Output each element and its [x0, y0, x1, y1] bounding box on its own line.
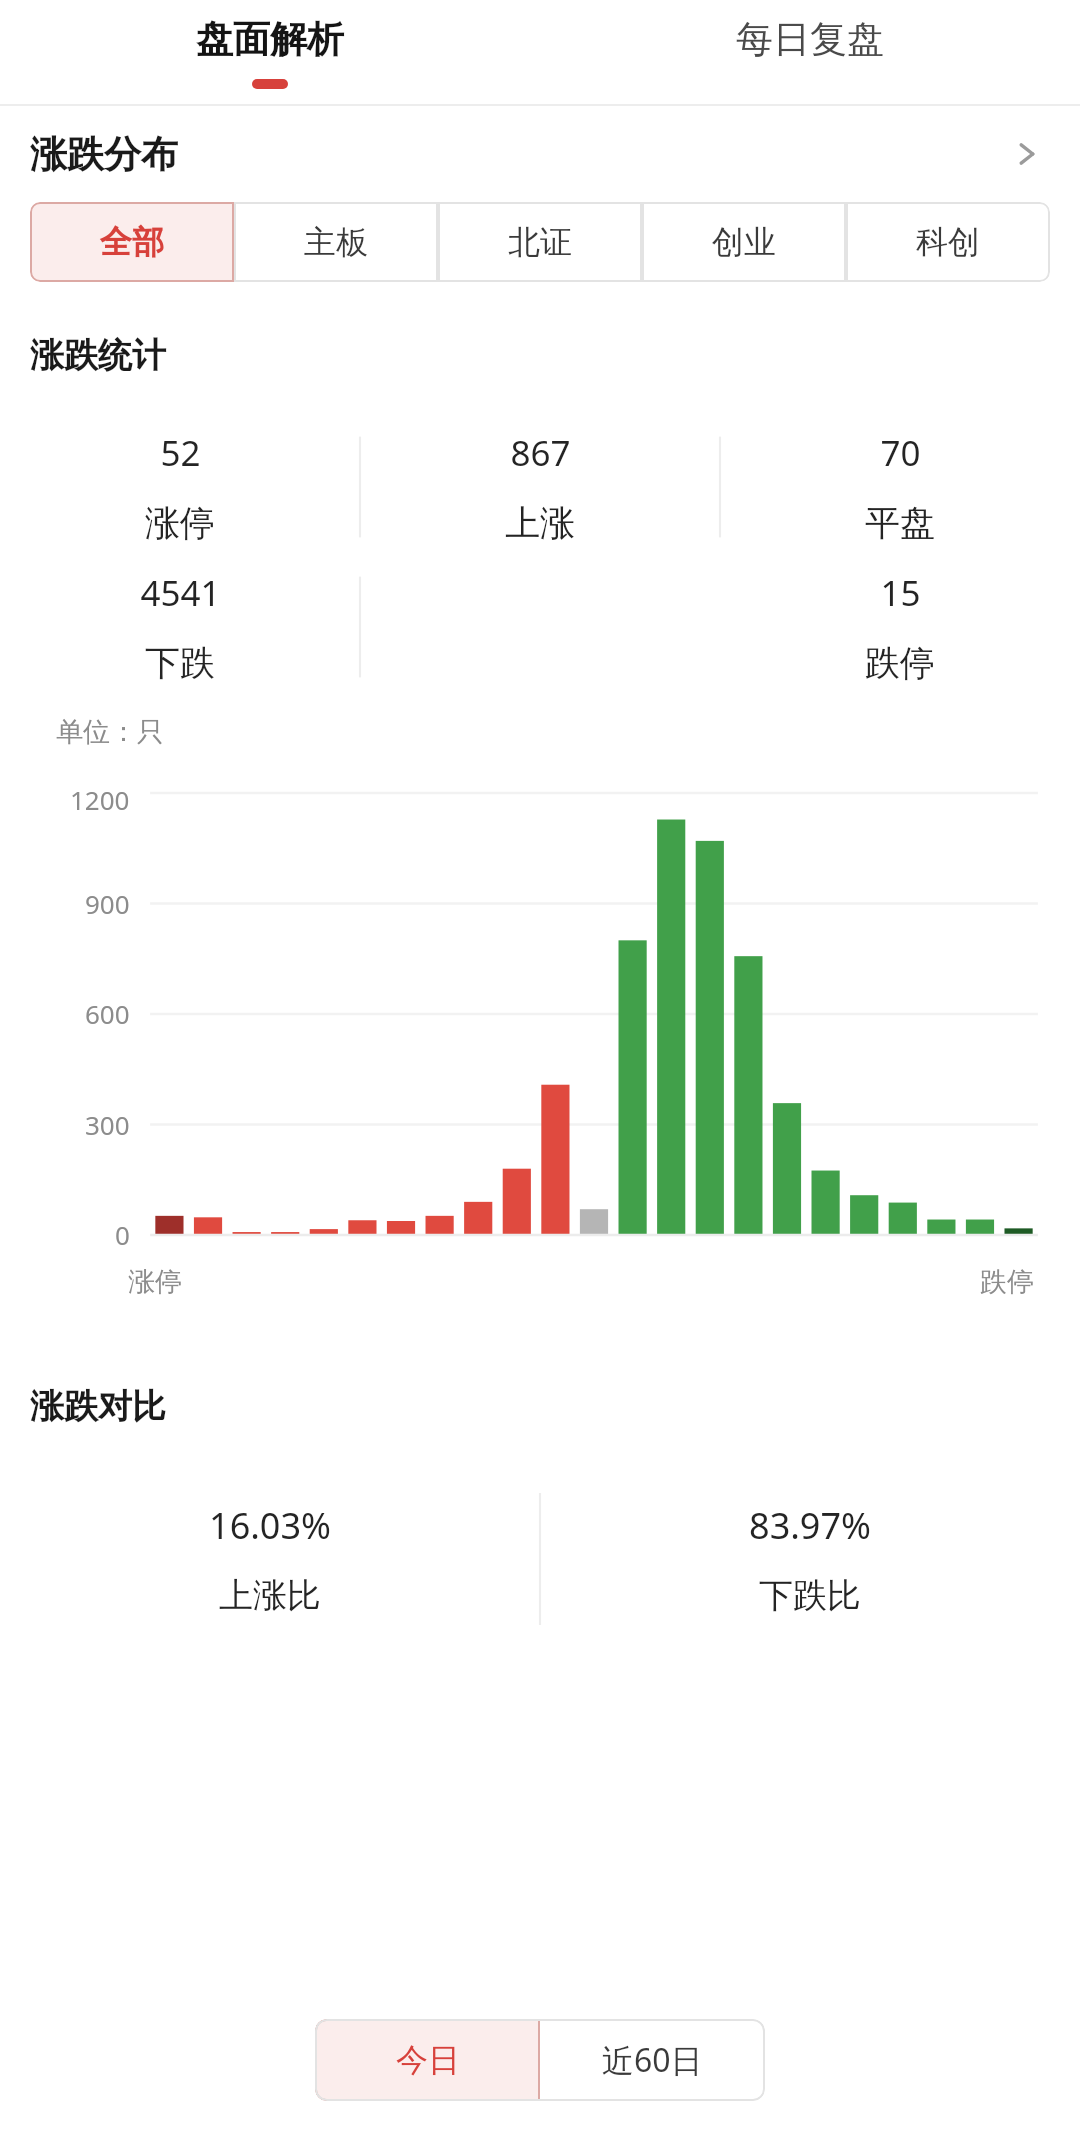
button[interactable]: 今日	[315, 2019, 540, 2101]
staticText: 15	[880, 569, 921, 617]
staticText: 600	[85, 996, 130, 1031]
staticText: 每日复盘	[736, 16, 884, 63]
staticText: 创业	[712, 222, 776, 262]
staticText: 跌停	[980, 1265, 1034, 1299]
staticText: 0	[115, 1217, 130, 1252]
button[interactable]: 近60日	[540, 2019, 765, 2101]
staticText: 52	[160, 429, 201, 477]
staticText: 涨跌对比	[30, 1385, 166, 1428]
staticText: 平盘	[865, 501, 935, 545]
staticText: 涨停	[128, 1265, 182, 1299]
staticText: 涨跌分布	[30, 131, 178, 178]
staticText: 上涨	[505, 501, 575, 545]
staticText: 上涨比	[219, 1574, 321, 1617]
staticText: 1200	[70, 782, 130, 810]
button[interactable]: 涨跌分布	[0, 106, 1080, 202]
staticText: 近60日	[602, 2038, 703, 2082]
staticText: 跌停	[865, 641, 935, 685]
staticText: 科创	[916, 222, 980, 262]
staticText: 北证	[508, 222, 572, 262]
staticText: 单位：只	[56, 715, 164, 749]
staticText: 300	[85, 1107, 130, 1142]
staticText: 16.03%	[209, 1501, 331, 1550]
staticText: 涨跌统计	[30, 334, 166, 377]
staticText: 4541	[140, 569, 221, 617]
staticText: 下跌	[145, 641, 215, 685]
staticText: 83.97%	[749, 1501, 871, 1550]
staticText: 主板	[304, 222, 368, 262]
staticText: 盘面解析	[196, 16, 344, 63]
staticText: 今日	[396, 2040, 460, 2080]
button[interactable]: 盘面解析	[0, 0, 540, 104]
staticText: 70	[880, 429, 921, 477]
button[interactable]: 每日复盘	[540, 0, 1080, 104]
button[interactable]: 科创	[846, 202, 1050, 282]
staticText: 867	[510, 429, 571, 477]
button[interactable]: 创业	[642, 202, 846, 282]
button[interactable]: 主板	[234, 202, 438, 282]
button[interactable]: 查看涨跌分布详情	[1006, 134, 1046, 174]
staticText: 900	[85, 886, 130, 921]
button[interactable]: 全部	[30, 202, 234, 282]
staticText: 涨停	[145, 501, 215, 545]
button[interactable]: 北证	[438, 202, 642, 282]
staticText: 下跌比	[759, 1574, 861, 1617]
staticText: 全部	[100, 222, 164, 262]
